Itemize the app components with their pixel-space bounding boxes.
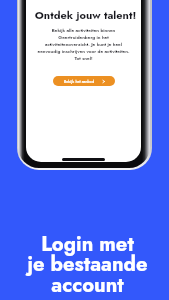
- staticText: Ontdek jouw talent!: [28, 7, 141, 23]
- staticText: Bekijk alle activiteiten binnen Geertrui…: [26, 27, 141, 62]
- staticText: Login met je bestaande account: [3, 229, 169, 300]
- button[interactable]: Bekijk het aanbod: [53, 76, 115, 86]
- staticText: Bekijk het aanbod: [64, 79, 95, 84]
